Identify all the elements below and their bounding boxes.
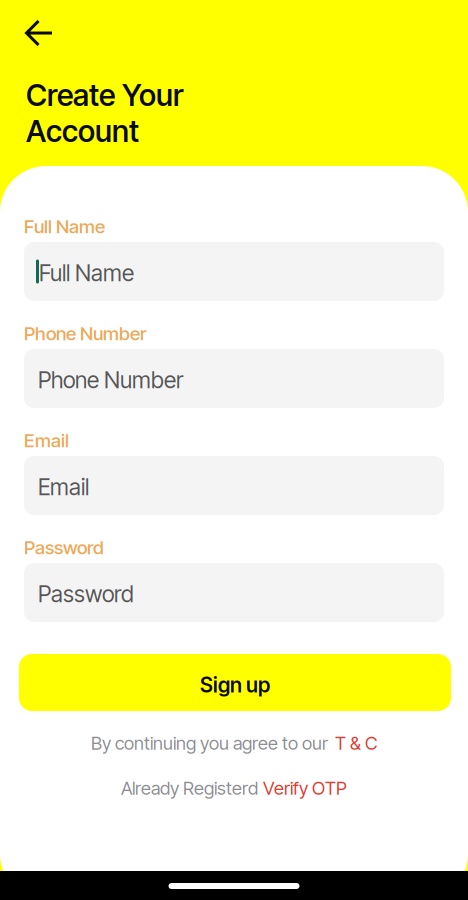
staticText: Full Name	[39, 259, 134, 287]
staticText: Verify OTP	[263, 777, 347, 799]
staticText: Create Your	[26, 77, 183, 113]
button[interactable]: Verify OTP	[263, 777, 347, 799]
staticText: Phone Number	[38, 366, 183, 394]
staticText: Account	[26, 113, 139, 149]
staticText: Full Name	[24, 215, 105, 238]
button[interactable]: Sign up	[19, 654, 451, 711]
button[interactable]: T & C	[335, 732, 377, 754]
staticText: Email	[24, 429, 69, 452]
staticText: T & C	[335, 732, 377, 754]
staticText: Password	[24, 536, 104, 559]
staticText: Password	[38, 580, 134, 608]
staticText: Already Registerd	[121, 777, 258, 799]
staticText: By continuing you agree to our	[91, 732, 328, 754]
staticText: Phone Number	[24, 322, 146, 345]
staticText: Email	[38, 473, 89, 501]
staticText: Sign up	[200, 672, 270, 698]
button[interactable]: Back	[0, 16, 73, 50]
